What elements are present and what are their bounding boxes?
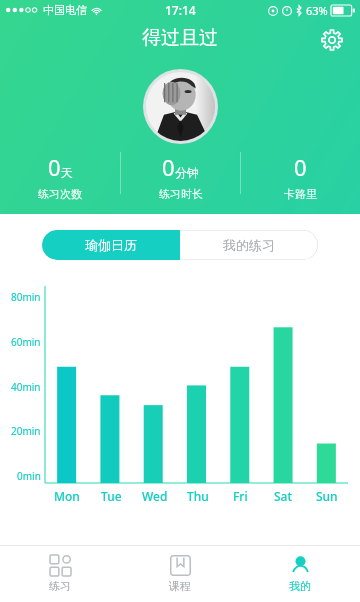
staticText: 练习次数 <box>38 187 82 200</box>
staticText: 20min <box>11 424 41 438</box>
staticText: 80min <box>11 290 41 304</box>
button[interactable]: Profile photo <box>143 69 218 144</box>
button[interactable]: 我的练习 <box>180 230 318 260</box>
staticText: 我的 <box>289 579 311 593</box>
staticText: 40min <box>11 380 41 394</box>
button[interactable]: 0 <box>0 152 120 200</box>
button[interactable]: 我的 <box>240 546 360 602</box>
staticText: Fri <box>233 488 248 504</box>
staticText: 课程 <box>169 579 191 593</box>
staticText: 0 <box>162 152 175 182</box>
staticText: 分钟 <box>175 165 199 180</box>
staticText: Thu <box>187 488 209 504</box>
staticText: 17:14 <box>165 2 196 18</box>
staticText: 0 <box>48 152 61 182</box>
staticText: Sun <box>316 488 338 504</box>
staticText: 卡路里 <box>284 187 317 200</box>
staticText: Sat <box>274 488 293 504</box>
staticText: 瑜伽日历 <box>85 237 137 253</box>
button[interactable]: 课程 <box>120 546 240 602</box>
staticText: 63% <box>306 3 328 18</box>
staticText: Tue <box>101 488 122 504</box>
staticText: 练习 <box>49 579 71 593</box>
button[interactable]: Settings <box>314 22 350 58</box>
staticText: Mon <box>54 488 80 504</box>
staticText: Wed <box>142 488 168 504</box>
staticText: 练习时长 <box>159 187 203 200</box>
staticText: 天 <box>61 165 73 180</box>
button[interactable]: 0 <box>121 152 240 200</box>
staticText: 60min <box>11 335 41 349</box>
staticText: 0 <box>294 152 307 182</box>
button[interactable]: 练习 <box>0 546 120 602</box>
staticText: 我的练习 <box>223 237 275 253</box>
button[interactable]: 0 <box>241 152 360 200</box>
button[interactable]: 瑜伽日历 <box>42 230 180 260</box>
staticText: 得过且过 <box>142 26 218 50</box>
staticText: 0min <box>17 469 41 483</box>
staticText: 中国电信 <box>43 3 87 17</box>
